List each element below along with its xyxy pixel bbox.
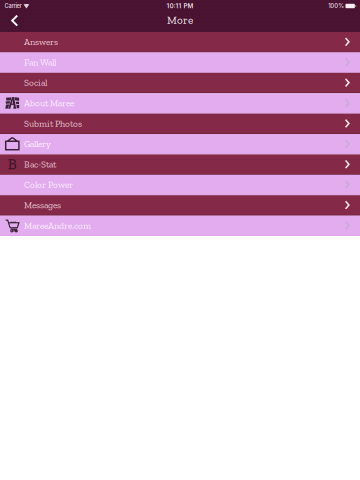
staticText: Answers (24, 36, 58, 47)
staticText: About Maree (24, 97, 74, 109)
staticText: B (8, 155, 17, 173)
staticText: Submit Photos (24, 118, 82, 129)
button[interactable]: Back (0, 12, 23, 32)
staticText: Bac-Stat (24, 159, 56, 170)
staticText: Gallery (24, 138, 51, 149)
button[interactable]: About Maree (0, 93, 360, 114)
staticText: Carrier (4, 3, 21, 9)
staticText: 100% (328, 2, 344, 9)
button[interactable]: Submit Photos (0, 114, 360, 134)
staticText: Social (24, 77, 47, 88)
staticText: Color Power (24, 179, 73, 190)
button[interactable]: Answers (0, 32, 360, 52)
button[interactable]: B (0, 154, 360, 175)
button[interactable]: Fan Wall (0, 52, 360, 73)
staticText: Messages (24, 199, 61, 211)
button[interactable]: Color Power (0, 175, 360, 195)
button[interactable]: Gallery (0, 134, 360, 154)
staticText: 10:11 PM (166, 2, 193, 10)
button[interactable]: Messages (0, 195, 360, 216)
staticText: More (167, 13, 193, 26)
button[interactable]: MareeAndre.com (0, 216, 360, 236)
staticText: Fan Wall (24, 57, 56, 68)
staticText: MareeAndre.com (24, 220, 91, 231)
button[interactable]: Social (0, 73, 360, 93)
